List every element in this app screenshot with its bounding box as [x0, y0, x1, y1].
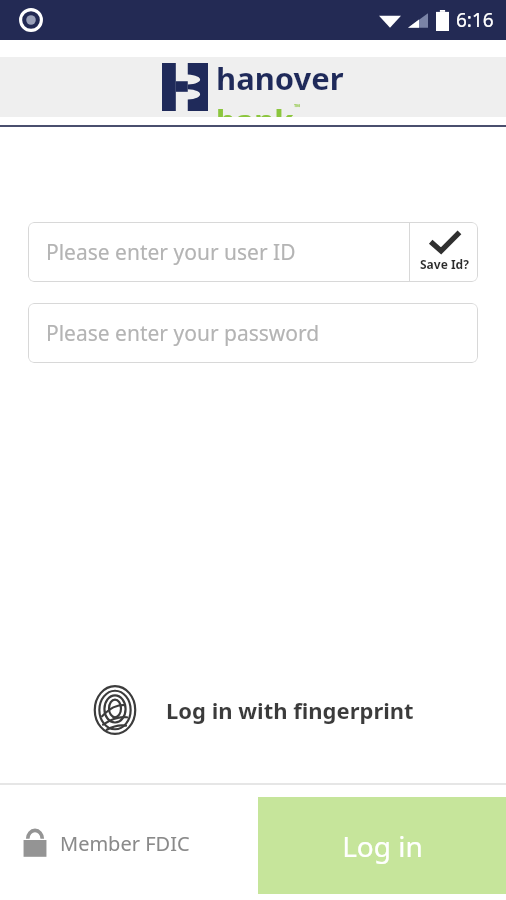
staticText: Please enter your user ID	[46, 238, 296, 267]
button[interactable]: Save Id?	[410, 222, 478, 282]
button[interactable]: Please enter your user ID	[28, 222, 409, 282]
button[interactable]: Please enter your password	[28, 303, 478, 363]
staticText: bank	[216, 99, 294, 117]
staticText: Log in	[342, 827, 423, 865]
button[interactable]: Log in with fingerprint	[0, 678, 506, 742]
button[interactable]: Log in	[258, 797, 506, 894]
staticText: hanover	[216, 57, 344, 99]
staticText: Save Id?	[420, 256, 469, 272]
staticText: Member FDIC	[60, 830, 190, 857]
staticText: Log in with fingerprint	[166, 695, 414, 725]
staticText: 6:16	[456, 7, 494, 33]
staticText: ™	[294, 101, 301, 112]
button[interactable]: Member FDIC	[22, 828, 190, 858]
staticText: Please enter your password	[46, 319, 320, 348]
